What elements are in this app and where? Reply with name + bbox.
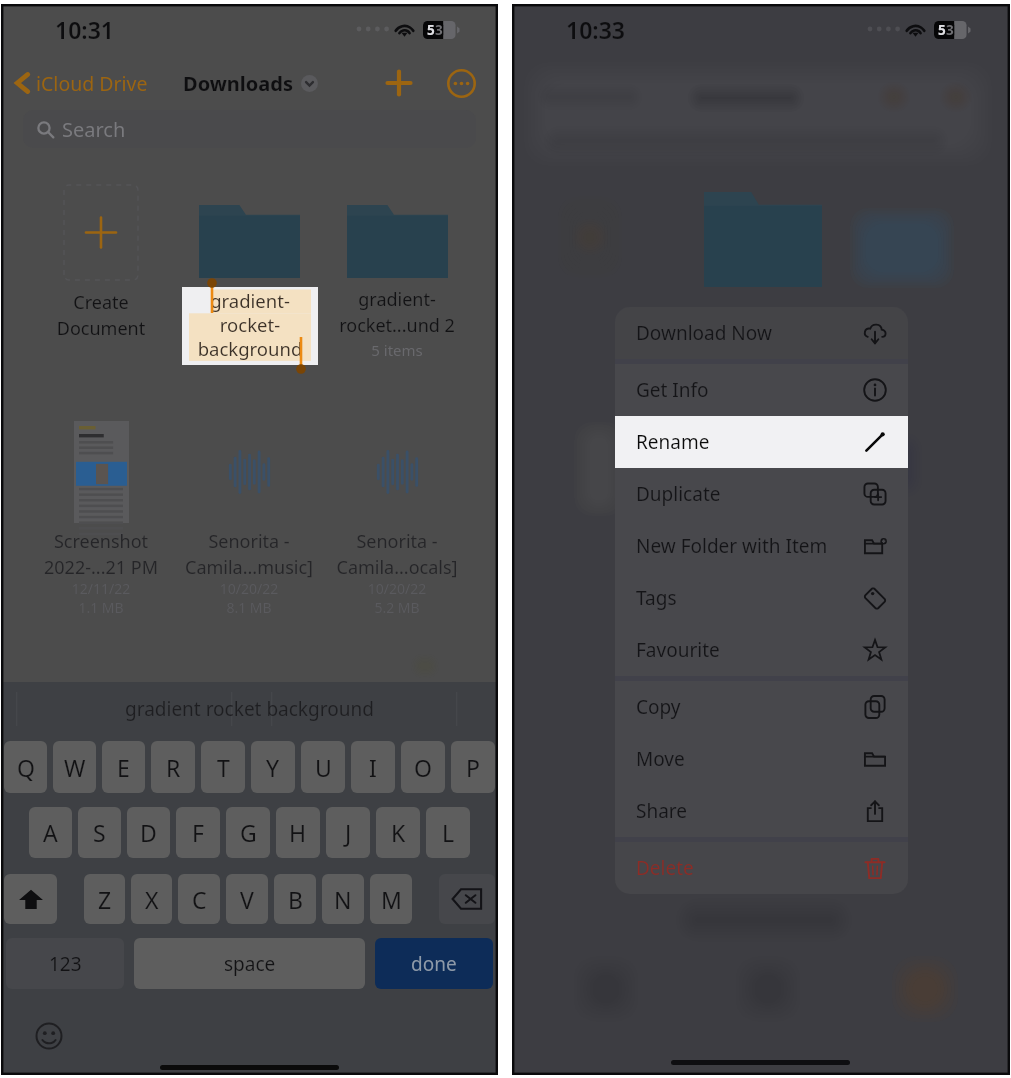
staticText: 10/20/22	[174, 579, 324, 598]
button[interactable]: Duplicate	[615, 468, 908, 520]
staticText: V	[240, 884, 254, 915]
button[interactable]: G	[226, 807, 270, 858]
staticText: done	[411, 951, 457, 977]
button[interactable]: space	[134, 938, 365, 989]
button[interactable]: K	[376, 807, 420, 858]
button[interactable]: X	[131, 874, 172, 924]
staticText: 123	[49, 951, 82, 977]
button[interactable]: B	[274, 874, 316, 924]
button[interactable]: Create Document	[27, 185, 175, 341]
staticText: New Folder with Item	[636, 533, 828, 559]
button[interactable]: Senorita - Camila...ocals]	[322, 421, 472, 617]
button[interactable]: Emoji keyboard	[29, 1016, 69, 1056]
staticText: U	[315, 752, 332, 783]
button[interactable]: 123	[6, 938, 124, 989]
staticText: S	[93, 817, 106, 848]
button[interactable]: E	[102, 741, 145, 793]
button[interactable]: N	[322, 874, 364, 924]
button[interactable]: P	[451, 741, 495, 793]
staticText: 8.1 MB	[174, 598, 324, 617]
staticText: H	[289, 817, 307, 848]
staticText: G	[240, 817, 257, 848]
staticText: gradient- rocket- background	[182, 288, 318, 361]
button[interactable]: T	[201, 741, 245, 793]
button[interactable]: Favourite	[615, 624, 908, 676]
button[interactable]: Add	[379, 59, 419, 107]
button[interactable]: gradient- rocket...und 2	[322, 205, 472, 360]
staticText: Create Document	[27, 290, 175, 341]
staticText: C	[192, 884, 207, 915]
staticText: Duplicate	[636, 481, 721, 507]
button[interactable]: Copy	[615, 681, 908, 733]
staticText: Screenshot 2022-...21 PM	[26, 529, 176, 579]
button[interactable]: done	[375, 938, 493, 989]
staticText: P	[466, 752, 480, 783]
staticText: F	[192, 817, 204, 848]
button[interactable]: Z	[84, 874, 125, 924]
staticText: Move	[636, 746, 685, 772]
staticText: Rename	[636, 429, 710, 455]
staticText: gradient- rocket...und 2	[322, 287, 472, 338]
button[interactable]: Screenshot 2022-...21 PM	[26, 421, 176, 617]
staticText: iCloud Drive	[36, 70, 148, 97]
button[interactable]: A	[29, 807, 72, 858]
staticText: 10/20/22	[322, 579, 472, 598]
staticText: Get Info	[636, 377, 709, 403]
button[interactable]: Get Info	[615, 364, 908, 416]
button[interactable]: New Folder with Item	[615, 520, 908, 572]
staticText: T	[217, 752, 230, 783]
staticText: Search	[62, 116, 126, 143]
button[interactable]: Q	[4, 741, 47, 793]
button[interactable]: Move	[615, 733, 908, 785]
button[interactable]: M	[370, 874, 412, 924]
button[interactable]: Shift	[4, 874, 57, 924]
button[interactable]: Search	[23, 110, 476, 148]
button[interactable]: Delete	[615, 842, 908, 894]
staticText: Delete	[636, 855, 694, 881]
button[interactable]: F	[176, 807, 220, 858]
button[interactable]: Senorita - Camila...music]	[174, 421, 324, 617]
button[interactable]: Backspace	[439, 874, 495, 924]
staticText: M	[381, 884, 402, 915]
button[interactable]: Downloads	[183, 59, 318, 107]
button[interactable]: H	[276, 807, 320, 858]
button[interactable]: V	[226, 874, 268, 924]
button[interactable]: D	[127, 807, 170, 858]
button[interactable]: Y	[251, 741, 295, 793]
staticText: 3	[435, 21, 443, 39]
staticText: K	[391, 817, 406, 848]
staticText: A	[43, 817, 58, 848]
button[interactable]: L	[426, 807, 470, 858]
staticText: D	[140, 817, 157, 848]
staticText: 5 items	[322, 340, 472, 360]
staticText: 10:33	[566, 14, 625, 45]
button[interactable]: Share	[615, 785, 908, 837]
staticText: 3	[946, 21, 954, 39]
button[interactable]: iCloud Drive	[13, 59, 148, 107]
button[interactable]: O	[401, 741, 445, 793]
button[interactable]: Rename	[615, 416, 908, 468]
staticText: space	[224, 951, 276, 977]
staticText: 10:31	[55, 14, 114, 45]
staticText: Downloads	[183, 70, 293, 97]
button[interactable]: R	[151, 741, 195, 793]
button[interactable]: U	[301, 741, 345, 793]
staticText: N	[334, 884, 352, 915]
staticText: J	[345, 817, 352, 848]
button[interactable]: C	[178, 874, 220, 924]
staticText: Tags	[636, 585, 677, 611]
staticText: Z	[98, 884, 112, 915]
staticText: 5.2 MB	[322, 598, 472, 617]
staticText: 5	[938, 21, 946, 39]
button[interactable]: Tags	[615, 572, 908, 624]
staticText: Favourite	[636, 637, 720, 663]
staticText: B	[288, 884, 303, 915]
button[interactable]: Download Now	[615, 307, 908, 359]
button[interactable]: I	[351, 741, 395, 793]
button[interactable]: J	[326, 807, 370, 858]
button[interactable]: More options	[443, 59, 479, 107]
staticText: Senorita - Camila...music]	[174, 529, 324, 579]
button[interactable]: S	[78, 807, 121, 858]
button[interactable]: W	[53, 741, 96, 793]
